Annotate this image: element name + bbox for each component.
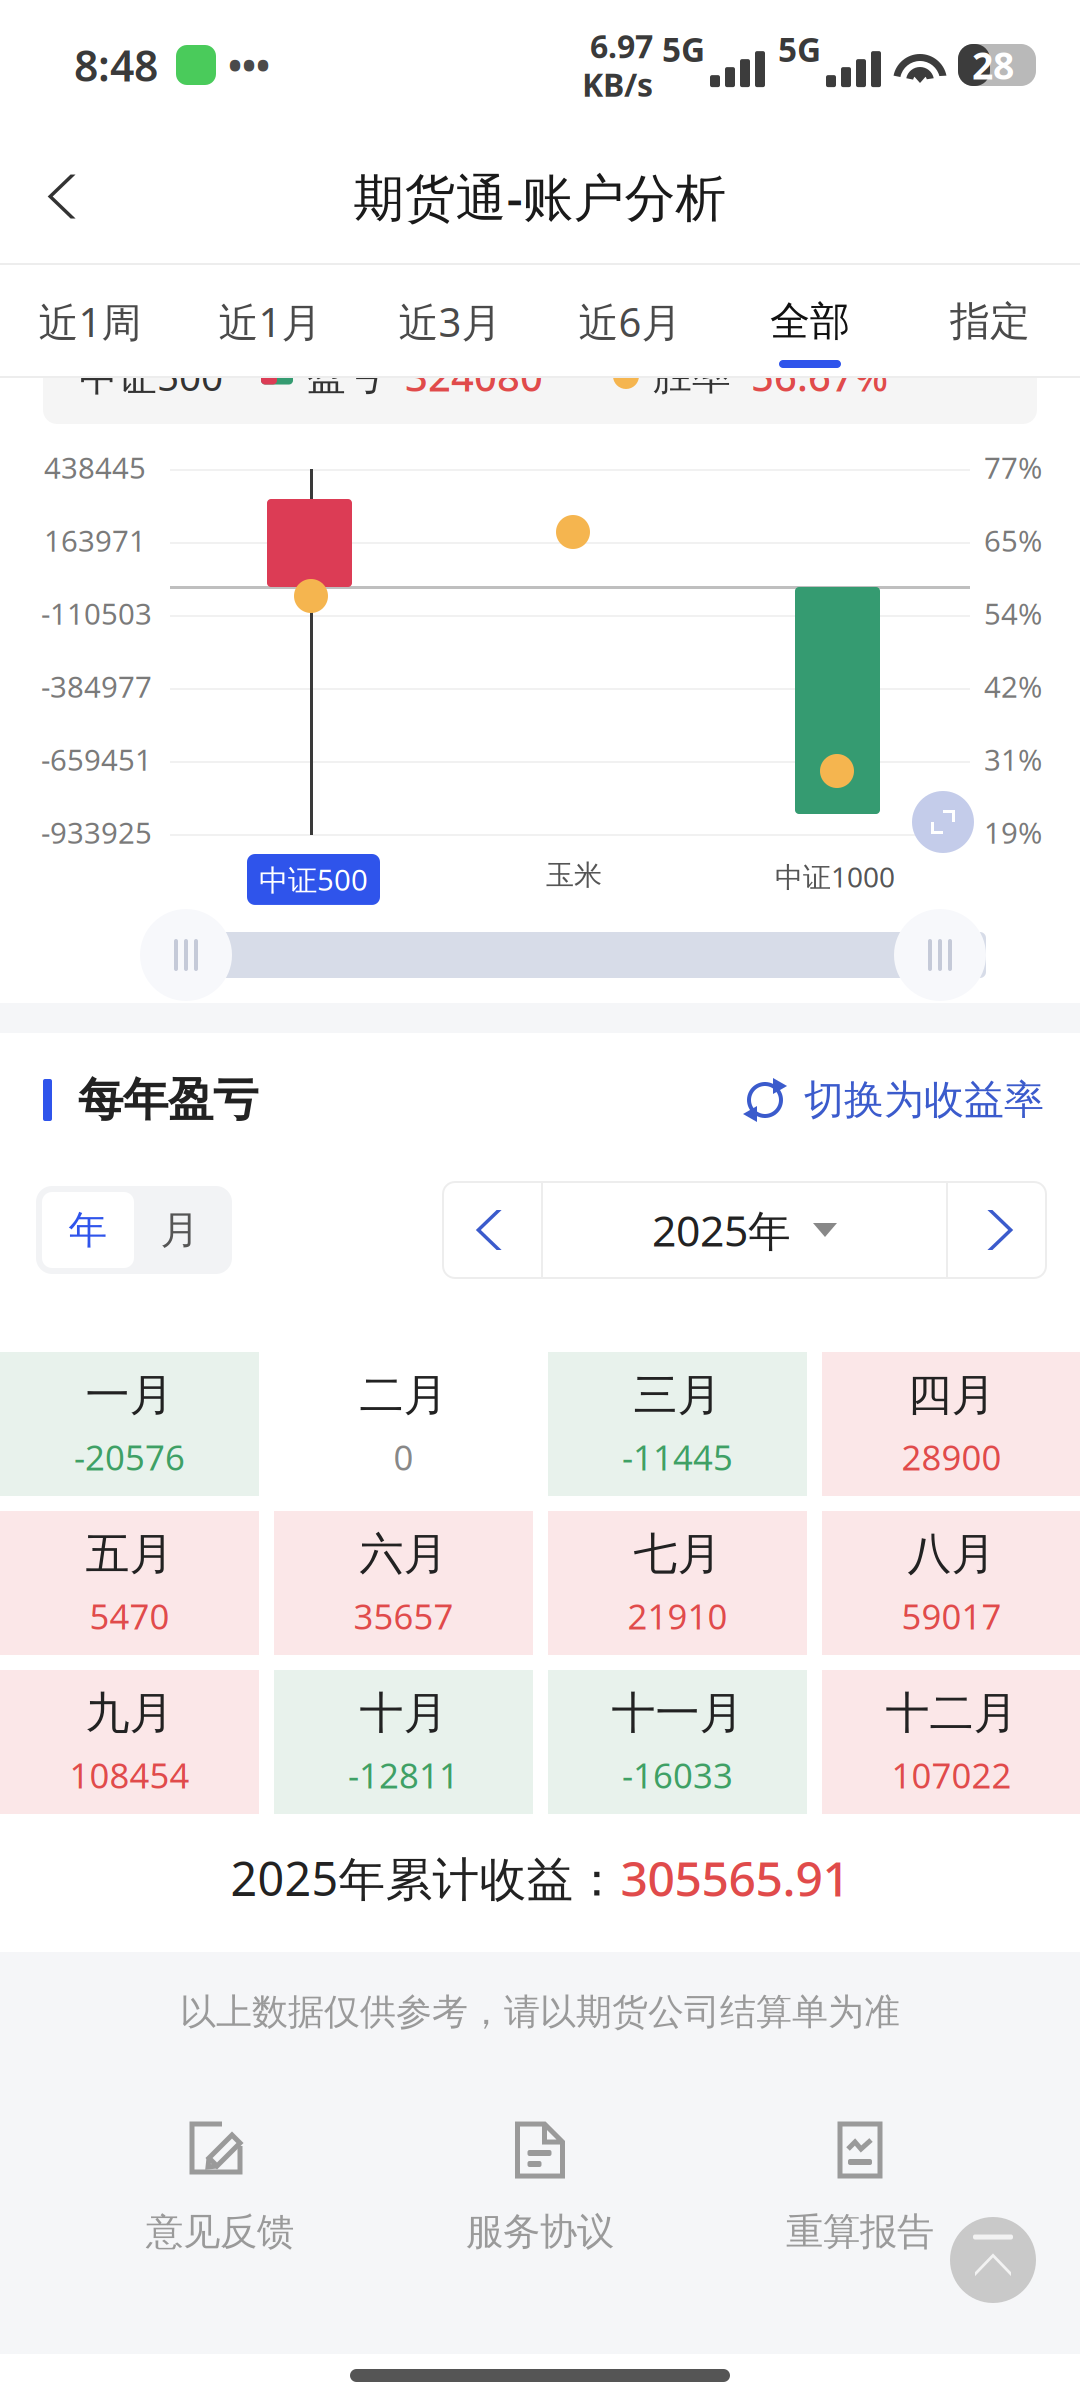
staticText: 65% xyxy=(984,521,1042,560)
staticText: 5470 xyxy=(89,1593,169,1639)
staticText: 每年盈亏 xyxy=(78,1072,258,1128)
button[interactable]: Previous year xyxy=(443,1182,541,1278)
button[interactable]: 全部 xyxy=(720,265,900,378)
staticText: 十月 xyxy=(359,1686,447,1740)
staticText: 19% xyxy=(984,813,1042,852)
staticText: 21910 xyxy=(627,1593,727,1639)
staticText: -384977 xyxy=(41,667,152,706)
button[interactable]: 七月 xyxy=(548,1511,807,1655)
staticText: 期货通-账户分析 xyxy=(353,163,726,230)
button[interactable]: 十月 xyxy=(274,1670,533,1814)
staticText: 六月 xyxy=(359,1527,447,1581)
button[interactable]: Expand chart xyxy=(912,791,974,853)
staticText: 35657 xyxy=(353,1593,453,1639)
button[interactable]: 近6月 xyxy=(540,265,720,378)
staticText: 一月 xyxy=(85,1368,173,1422)
staticText: 5G xyxy=(662,27,705,71)
staticText: 十二月 xyxy=(885,1686,1017,1740)
staticText: 0 xyxy=(393,1434,413,1480)
button[interactable]: 意见反馈 xyxy=(60,2121,380,2255)
staticText: 全部 xyxy=(770,297,850,346)
staticText: 305565.91 xyxy=(620,1846,849,1910)
staticText: 八月 xyxy=(907,1527,995,1581)
staticText: 切换为收益率 xyxy=(804,1075,1044,1124)
staticText: 中证500 xyxy=(259,860,368,899)
staticText: 玉米 xyxy=(546,858,602,892)
staticText: 九月 xyxy=(85,1686,173,1740)
staticText: 77% xyxy=(984,448,1042,487)
staticText: 服务协议 xyxy=(466,2209,614,2255)
staticText: -12811 xyxy=(348,1752,459,1798)
button[interactable]: 切换为收益率 xyxy=(742,1075,1044,1124)
staticText: 中证1000 xyxy=(775,858,895,895)
staticText: -20576 xyxy=(74,1434,185,1480)
staticText: ••• xyxy=(228,40,270,90)
staticText: 近1月 xyxy=(218,295,321,348)
staticText: 28 xyxy=(972,40,1014,90)
staticText: 十一月 xyxy=(611,1686,743,1740)
staticText: 438445 xyxy=(44,448,146,487)
button[interactable]: 近1周 xyxy=(0,265,180,378)
staticText: 5G xyxy=(778,27,821,71)
button[interactable]: 六月 xyxy=(274,1511,533,1655)
staticText: 163971 xyxy=(44,521,146,560)
staticText: 月 xyxy=(160,1206,199,1254)
button[interactable]: Scroll to top xyxy=(950,2217,1036,2303)
staticText: 胜率 xyxy=(653,352,731,400)
button[interactable]: 四月 xyxy=(822,1352,1080,1496)
staticText: 6.97 xyxy=(590,24,653,67)
staticText: 近6月 xyxy=(578,295,681,348)
button[interactable]: Back xyxy=(0,130,130,263)
staticText: 324080 xyxy=(405,349,543,402)
button[interactable]: 五月 xyxy=(0,1511,259,1655)
button[interactable]: 指定 xyxy=(900,265,1080,378)
button[interactable]: 服务协议 xyxy=(380,2121,700,2255)
staticText: 59017 xyxy=(901,1593,1001,1639)
staticText: 四月 xyxy=(907,1368,995,1422)
staticText: 2025年累计收益： xyxy=(230,1847,620,1909)
staticText: 近3月 xyxy=(398,295,501,348)
staticText: 年 xyxy=(68,1206,107,1254)
staticText: 七月 xyxy=(633,1527,721,1581)
staticText: 近1周 xyxy=(38,295,141,348)
staticText: -16033 xyxy=(622,1752,733,1798)
staticText: -11445 xyxy=(622,1434,733,1480)
button[interactable]: 近1月 xyxy=(180,265,360,378)
button[interactable]: 年 xyxy=(42,1192,134,1268)
button[interactable]: 重算报告 xyxy=(700,2121,1020,2255)
staticText: 指定 xyxy=(950,297,1030,346)
button[interactable]: 十二月 xyxy=(822,1670,1080,1814)
staticText: 以上数据仅供参考，请以期货公司结算单为准 xyxy=(180,1990,900,2034)
button[interactable]: 近3月 xyxy=(360,265,540,378)
button[interactable]: 三月 xyxy=(548,1352,807,1496)
button[interactable]: 八月 xyxy=(822,1511,1080,1655)
staticText: 中证500 xyxy=(79,350,223,402)
staticText: -659451 xyxy=(41,740,152,779)
staticText: 三月 xyxy=(633,1368,721,1422)
staticText: 二月 xyxy=(359,1368,447,1422)
staticText: 意见反馈 xyxy=(146,2209,294,2255)
staticText: 2025年 xyxy=(652,1202,791,1258)
staticText: KB/s xyxy=(582,63,653,105)
staticText: 56.67% xyxy=(751,349,888,402)
button[interactable]: Next year xyxy=(948,1182,1046,1278)
staticText: 盈亏 xyxy=(307,352,385,400)
staticText: -110503 xyxy=(41,594,152,633)
button[interactable]: 十一月 xyxy=(548,1670,807,1814)
staticText: 31% xyxy=(984,740,1042,779)
button[interactable]: 一月 xyxy=(0,1352,259,1496)
staticText: 28900 xyxy=(901,1434,1001,1480)
staticText: 54% xyxy=(984,594,1042,633)
button[interactable]: 二月 xyxy=(274,1352,533,1496)
staticText: 108454 xyxy=(69,1752,189,1798)
button[interactable]: 2025年 xyxy=(543,1182,946,1278)
staticText: 8:48 xyxy=(74,37,158,93)
button[interactable]: 月 xyxy=(134,1192,226,1268)
staticText: 107022 xyxy=(891,1752,1011,1798)
staticText: 42% xyxy=(984,667,1042,706)
staticText: -933925 xyxy=(41,813,152,852)
staticText: 重算报告 xyxy=(786,2209,934,2255)
staticText: 五月 xyxy=(85,1527,173,1581)
button[interactable]: 九月 xyxy=(0,1670,259,1814)
